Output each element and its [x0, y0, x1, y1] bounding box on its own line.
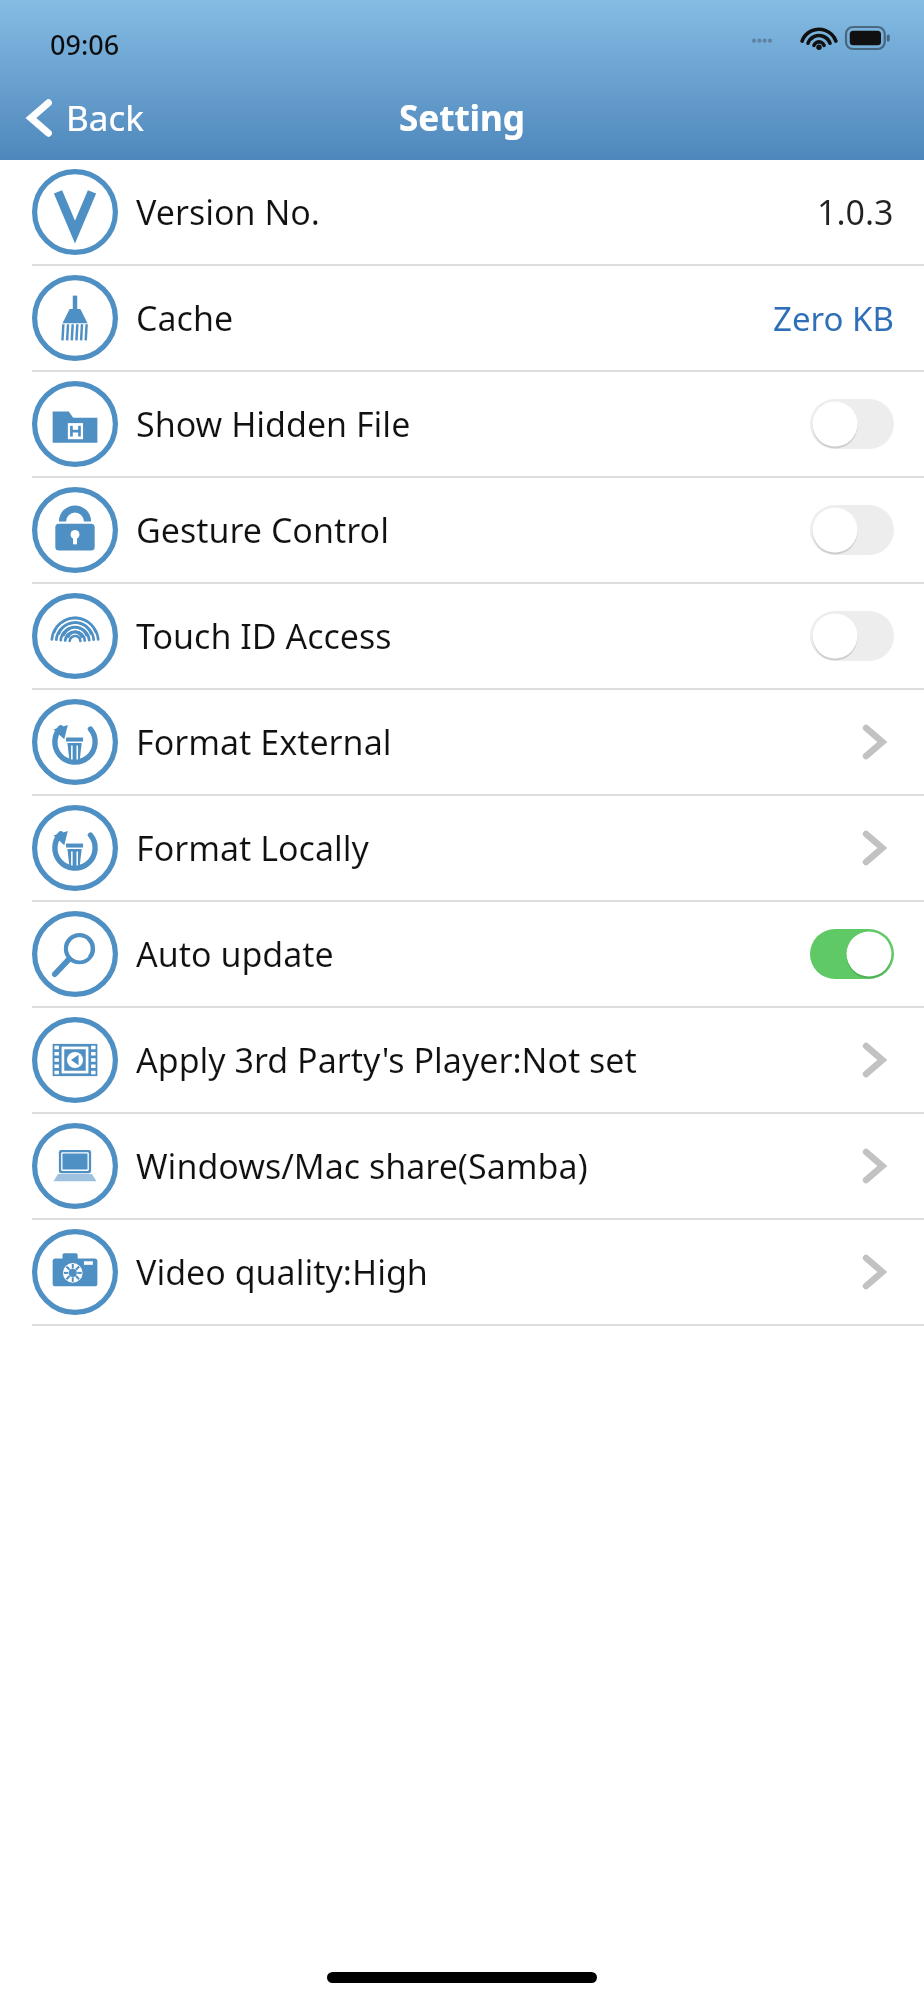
staticText: Version No.	[136, 189, 817, 235]
staticText: Gesture Control	[136, 507, 810, 553]
staticText: Auto update	[136, 931, 810, 977]
staticText: Format Locally	[136, 825, 854, 871]
button[interactable]: Version No.	[0, 160, 924, 266]
staticText: Video quality:High	[136, 1249, 854, 1295]
staticText: Touch ID Access	[136, 613, 810, 659]
button[interactable]: Off	[810, 611, 894, 661]
button[interactable]: Format Locally	[0, 796, 924, 902]
button[interactable]: Touch ID Access	[0, 584, 924, 690]
other: Open Windows/Mac share(Samba)	[854, 1146, 894, 1186]
button[interactable]: Apply 3rd Party's Player:Not set	[0, 1008, 924, 1114]
button[interactable]: Off	[810, 505, 894, 555]
button[interactable]: Auto update	[0, 902, 924, 1008]
staticText: 09:06	[50, 26, 120, 63]
button[interactable]: Cache	[0, 266, 924, 372]
other: Open Format Locally	[854, 828, 894, 868]
other: Open Apply 3rd Party's Player:Not set	[854, 1040, 894, 1080]
button[interactable]: Off	[810, 399, 894, 449]
button[interactable]: Back	[20, 88, 152, 148]
other: Open Video quality:High	[854, 1252, 894, 1292]
other: Open Format External	[854, 722, 894, 762]
staticText: Setting	[399, 94, 525, 142]
staticText: Zero KB	[773, 296, 894, 341]
button[interactable]: Show Hidden File	[0, 372, 924, 478]
staticText: Windows/Mac share(Samba)	[136, 1143, 854, 1189]
staticText: Apply 3rd Party's Player:Not set	[136, 1037, 854, 1083]
button[interactable]: Windows/Mac share(Samba)	[0, 1114, 924, 1220]
staticText: Format External	[136, 719, 854, 765]
staticText: 1.0.3	[817, 189, 894, 235]
button[interactable]: On	[810, 929, 894, 979]
button[interactable]: Format External	[0, 690, 924, 796]
staticText: Show Hidden File	[136, 401, 810, 447]
button[interactable]: Gesture Control	[0, 478, 924, 584]
staticText: Back	[66, 94, 144, 142]
staticText: Cache	[136, 295, 773, 341]
button[interactable]: Video quality:High	[0, 1220, 924, 1326]
